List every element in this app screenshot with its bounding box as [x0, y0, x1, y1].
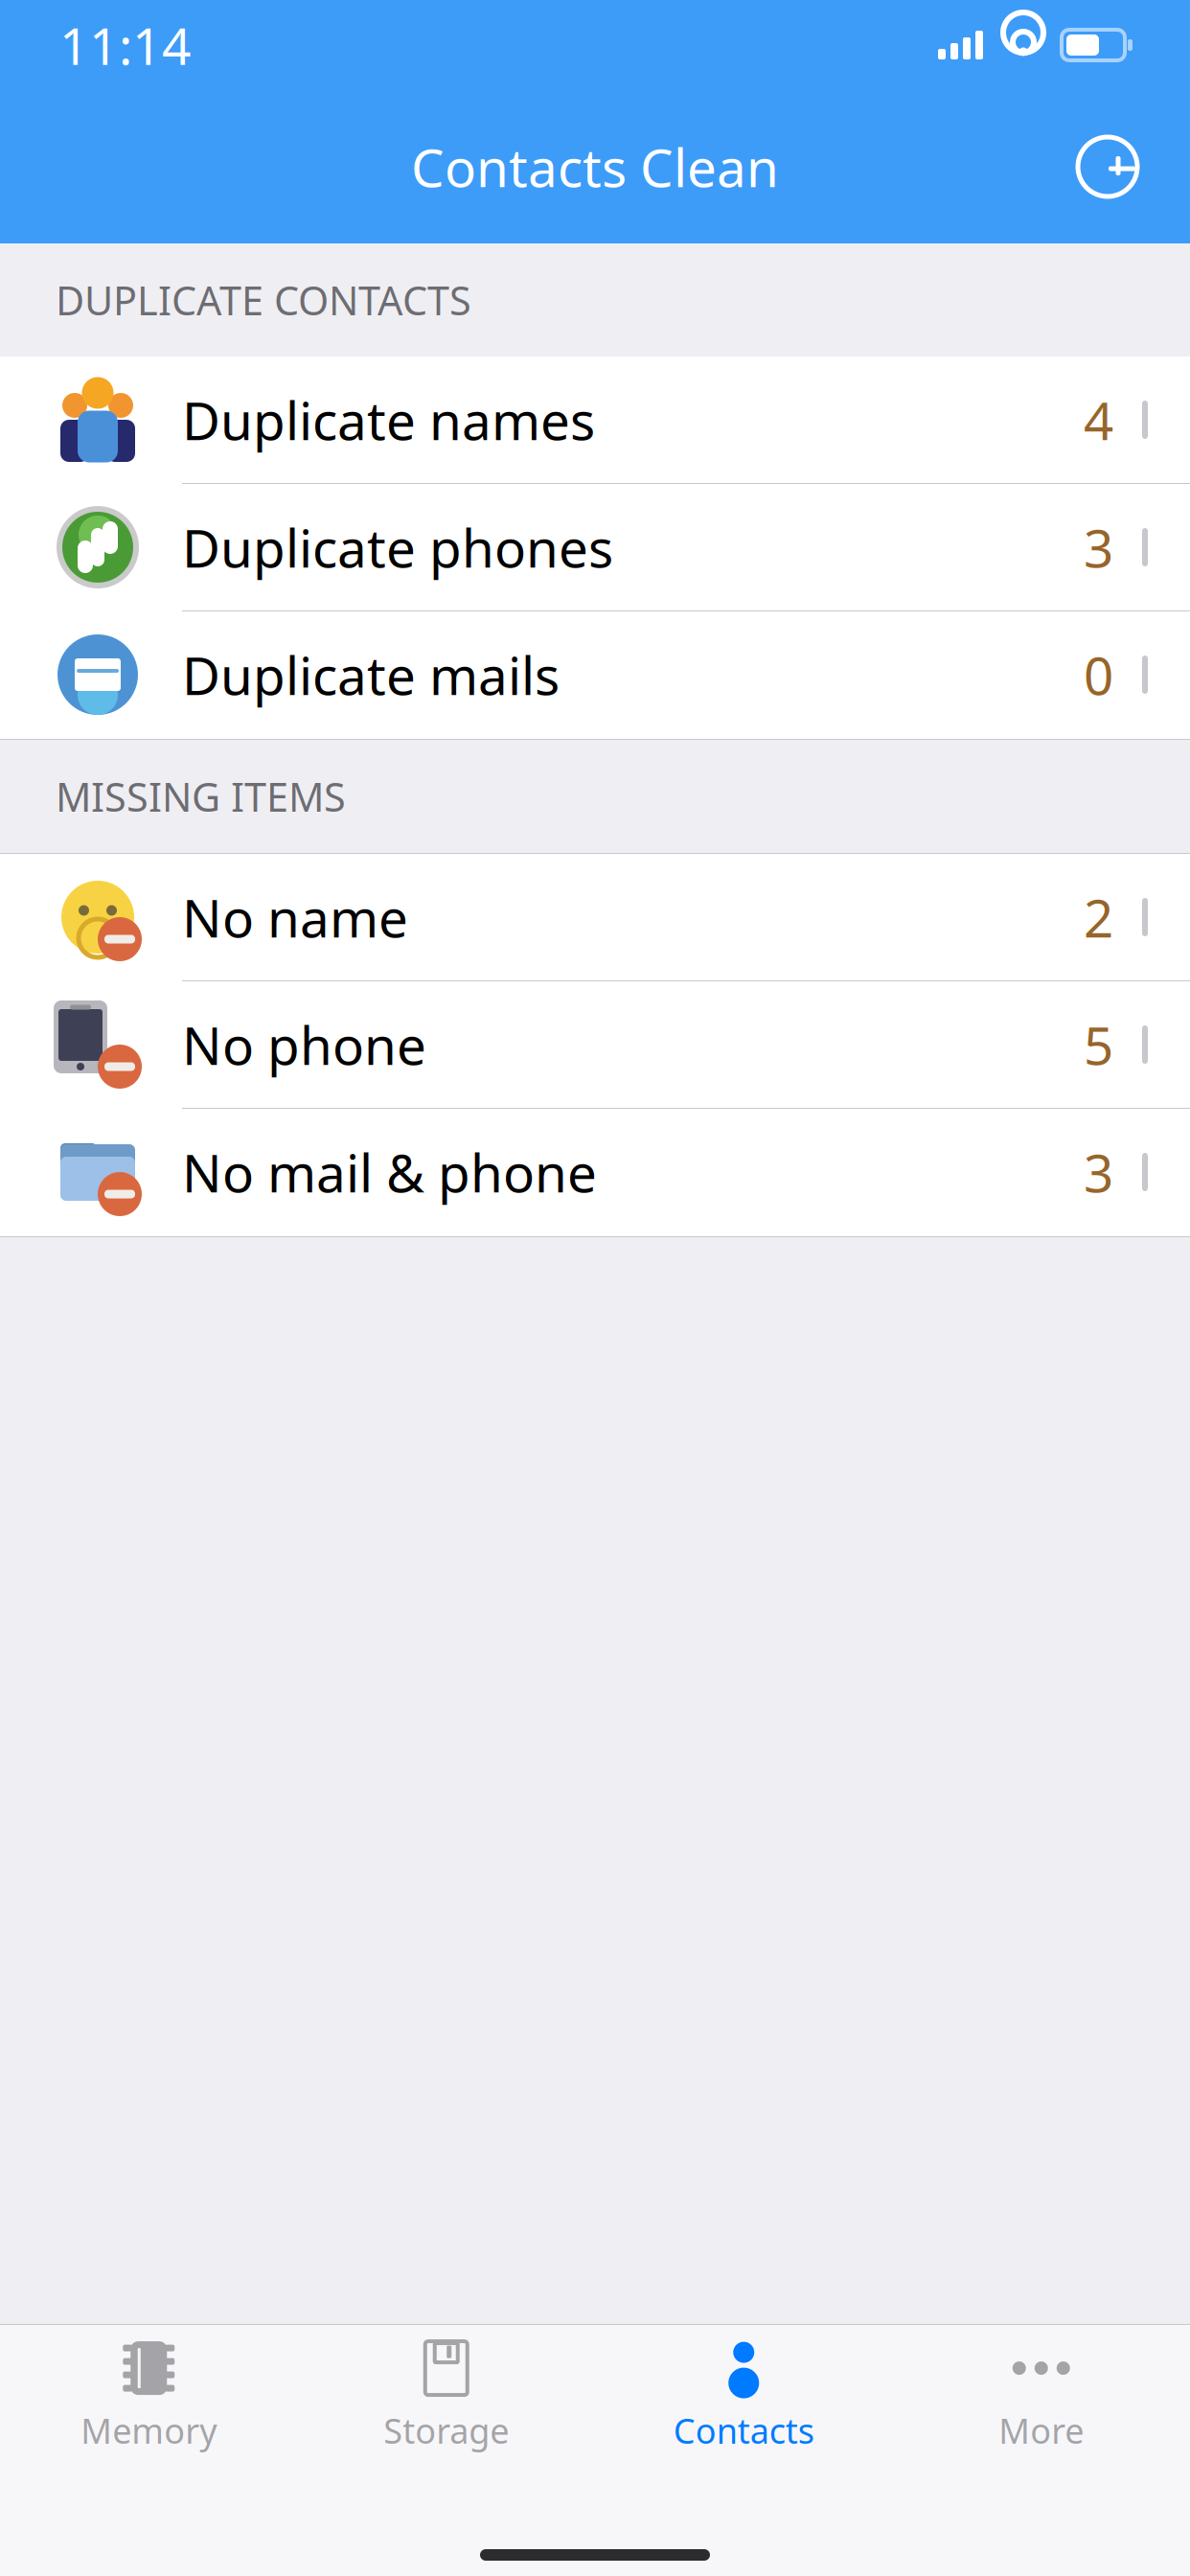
staticText: 0 [1084, 640, 1113, 709]
staticText: 3 [1084, 512, 1113, 582]
button[interactable]: Memory [0, 2334, 297, 2458]
staticText: 11:14 [59, 11, 192, 79]
staticText: Duplicate mails [182, 640, 560, 709]
button[interactable]: Duplicate phones [0, 484, 1190, 611]
button[interactable]: No phone [0, 981, 1190, 1109]
button[interactable]: Contacts [595, 2334, 892, 2458]
button[interactable]: No mail & phone [0, 1109, 1190, 1236]
staticText: MISSING ITEMS [56, 770, 346, 823]
button[interactable]: More [892, 2334, 1190, 2458]
staticText: Duplicate phones [182, 512, 613, 582]
staticText: DUPLICATE CONTACTS [56, 274, 471, 326]
staticText: 4 [1084, 385, 1113, 455]
staticText: More [999, 2407, 1084, 2453]
button[interactable]: Duplicate names [0, 356, 1190, 484]
staticText: No mail & phone [182, 1137, 597, 1207]
staticText: 5 [1084, 1010, 1113, 1079]
staticText: Memory [81, 2407, 217, 2453]
staticText: Contacts Clean [411, 132, 779, 202]
staticText: Storage [383, 2407, 509, 2453]
staticText: 3 [1084, 1137, 1113, 1207]
staticText: No phone [182, 1010, 426, 1079]
button[interactable]: Storage [297, 2334, 595, 2458]
button[interactable]: No name [0, 854, 1190, 981]
staticText: Contacts [673, 2407, 814, 2453]
button[interactable]: Duplicate mails [0, 611, 1190, 739]
button[interactable]: Statistics [1062, 121, 1154, 213]
staticText: 2 [1084, 882, 1113, 952]
staticText: No name [182, 882, 408, 952]
staticText: Duplicate names [182, 385, 595, 455]
